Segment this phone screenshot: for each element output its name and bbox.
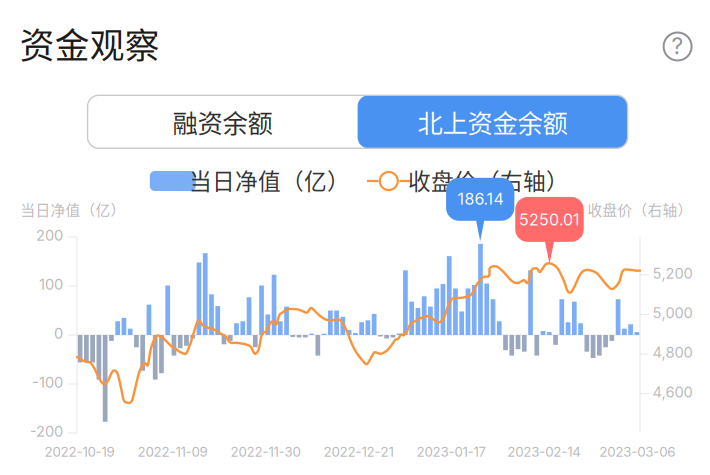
staticText: 186.14 — [457, 189, 503, 209]
button[interactable]: 融资余额 — [88, 95, 358, 148]
staticText: 100 — [39, 276, 63, 293]
staticText: 当日净值（亿） — [20, 199, 125, 220]
staticText: ? — [672, 32, 684, 60]
staticText: -100 — [32, 374, 63, 391]
staticText: 2023-01-17 — [416, 444, 486, 460]
staticText: 4,800 — [652, 344, 692, 361]
staticText: 5,200 — [652, 264, 692, 282]
staticText: 资金观察 — [20, 18, 160, 69]
staticText: 2022-10-19 — [45, 444, 115, 460]
staticText: 收盘价（右轴） — [587, 199, 692, 220]
staticText: 2023-03-06 — [599, 444, 675, 460]
staticText: 2022-12-21 — [323, 444, 393, 460]
staticText: 当日净值（亿） — [189, 163, 350, 196]
staticText: 0 — [54, 325, 63, 342]
staticText: 融资余额 — [173, 103, 273, 140]
staticText: 5250.01 — [519, 210, 580, 229]
staticText: 收盘价（右轴） — [408, 163, 569, 196]
staticText: 2023-02-14 — [507, 444, 581, 460]
button[interactable]: 北上资金余额 — [358, 95, 628, 148]
staticText: 200 — [36, 227, 63, 244]
staticText: 4,600 — [652, 383, 692, 401]
staticText: 2022-11-09 — [138, 444, 208, 460]
staticText: 北上资金余额 — [418, 103, 568, 140]
staticText: -200 — [30, 423, 63, 440]
staticText: 5,000 — [652, 304, 692, 322]
staticText: 2022-11-30 — [230, 444, 300, 460]
button[interactable]: Help — [658, 26, 698, 66]
